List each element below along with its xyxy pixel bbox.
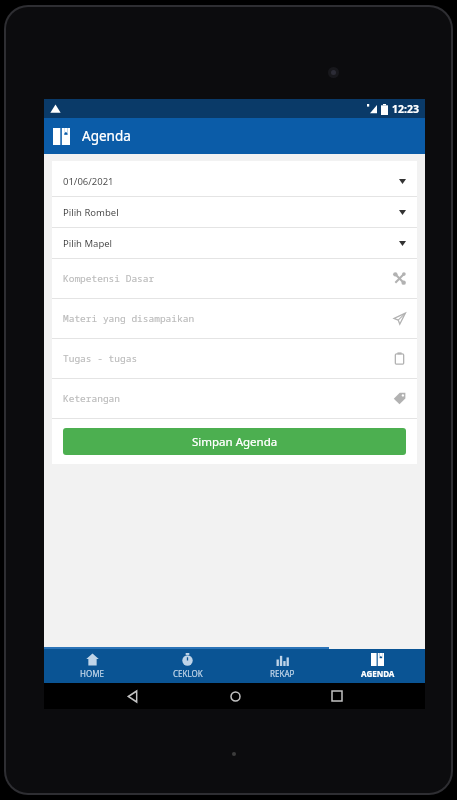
- staticText: Simpan Agenda: [192, 434, 278, 450]
- button[interactable]: CEKLOK: [140, 649, 235, 683]
- staticText: HOME: [80, 668, 104, 679]
- button[interactable]: Tugas - tugas: [52, 339, 417, 378]
- staticText: CEKLOK: [173, 668, 203, 679]
- button[interactable]: Recent apps: [322, 683, 352, 709]
- staticText: Agenda: [82, 127, 131, 145]
- staticText: Materi yang disampaikan: [63, 312, 195, 325]
- staticText: AGENDA: [361, 668, 395, 679]
- staticText: 01/06/2021: [63, 175, 114, 188]
- button[interactable]: Pilih Mapel: [52, 228, 417, 258]
- button[interactable]: AGENDA: [330, 649, 425, 683]
- button[interactable]: Pilih Rombel: [52, 197, 417, 227]
- staticText: Pilih Rombel: [63, 206, 119, 219]
- button[interactable]: REKAP: [235, 649, 330, 683]
- button[interactable]: Simpan Agenda: [63, 428, 406, 455]
- button[interactable]: Materi yang disampaikan: [52, 299, 417, 338]
- staticText: 12:23: [392, 102, 419, 116]
- staticText: REKAP: [270, 668, 295, 679]
- button[interactable]: 01/06/2021: [52, 166, 417, 196]
- button[interactable]: Home: [220, 683, 250, 709]
- button[interactable]: Kompetensi Dasar: [52, 259, 417, 298]
- button[interactable]: Back: [117, 683, 147, 709]
- button[interactable]: Keterangan: [52, 379, 417, 418]
- staticText: Keterangan: [63, 392, 121, 405]
- button[interactable]: HOME: [44, 649, 140, 683]
- staticText: Pilih Mapel: [63, 237, 113, 250]
- staticText: Tugas - tugas: [63, 352, 138, 365]
- staticText: Kompetensi Dasar: [63, 272, 155, 285]
